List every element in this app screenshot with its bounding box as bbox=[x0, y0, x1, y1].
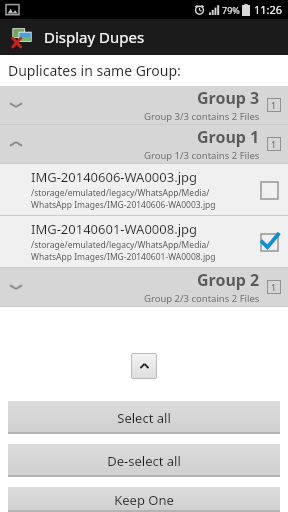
other: Expand bbox=[8, 100, 24, 110]
staticText: 11:26 bbox=[254, 2, 283, 17]
staticText: WhatsApp Images/IMG-20140606-WA0003.jpg bbox=[31, 199, 216, 211]
staticText: Group 1 bbox=[197, 126, 260, 148]
staticText: 1 bbox=[271, 138, 277, 150]
staticText: 1 bbox=[271, 99, 277, 111]
other: Not selected bbox=[259, 180, 279, 200]
staticText: Keep One bbox=[114, 491, 174, 509]
staticText: De-select all bbox=[107, 452, 181, 470]
button[interactable]: IMG-20140606-WA0003.jpg bbox=[0, 164, 288, 215]
other: Selected bbox=[259, 232, 279, 252]
other: Collapse bbox=[8, 139, 24, 149]
other: Expand bbox=[8, 282, 24, 292]
staticText: /storage/emulated/legacy/WhatsApp/Media/ bbox=[31, 187, 210, 199]
staticText: Group 2/3 contains 2 Files bbox=[144, 292, 260, 305]
button[interactable]: De-select all bbox=[8, 444, 280, 477]
button[interactable]: Expand bbox=[0, 268, 288, 306]
staticText: Duplicates in same Group: bbox=[8, 61, 181, 80]
button[interactable]: Collapse all bbox=[131, 353, 157, 379]
staticText: Display Dupes bbox=[44, 27, 145, 47]
button[interactable]: Select all bbox=[8, 401, 280, 434]
staticText: Group 2 bbox=[197, 269, 260, 291]
staticText: 1 bbox=[271, 281, 277, 293]
staticText: IMG-20140601-WA0008.jpg bbox=[31, 220, 197, 238]
button[interactable]: IMG-20140601-WA0008.jpg bbox=[0, 216, 288, 267]
staticText: Select all bbox=[117, 409, 171, 427]
button[interactable]: Keep One bbox=[8, 487, 280, 512]
staticText: IMG-20140606-WA0003.jpg bbox=[31, 168, 197, 186]
staticText: Group 1/3 contains 2 Files bbox=[144, 149, 260, 162]
staticText: WhatsApp Images/IMG-20140601-WA0008.jpg bbox=[31, 251, 216, 263]
button[interactable]: Expand bbox=[0, 86, 288, 124]
staticText: /storage/emulated/legacy/WhatsApp/Media/ bbox=[31, 239, 210, 251]
other: App icon bbox=[11, 26, 33, 48]
button[interactable]: Collapse bbox=[0, 125, 288, 163]
staticText: Group 3 bbox=[197, 87, 260, 109]
staticText: 79% bbox=[222, 4, 240, 16]
staticText: Group 3/3 contains 2 Files bbox=[144, 110, 260, 123]
